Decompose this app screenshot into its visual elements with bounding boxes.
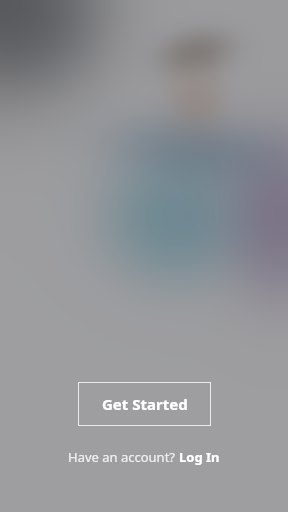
button[interactable]: Have an account? bbox=[68, 448, 220, 466]
staticText: Log In bbox=[179, 448, 220, 466]
button[interactable]: Get Started bbox=[78, 382, 211, 426]
staticText: Have an account? bbox=[68, 448, 179, 466]
staticText: Get Started bbox=[102, 394, 188, 414]
